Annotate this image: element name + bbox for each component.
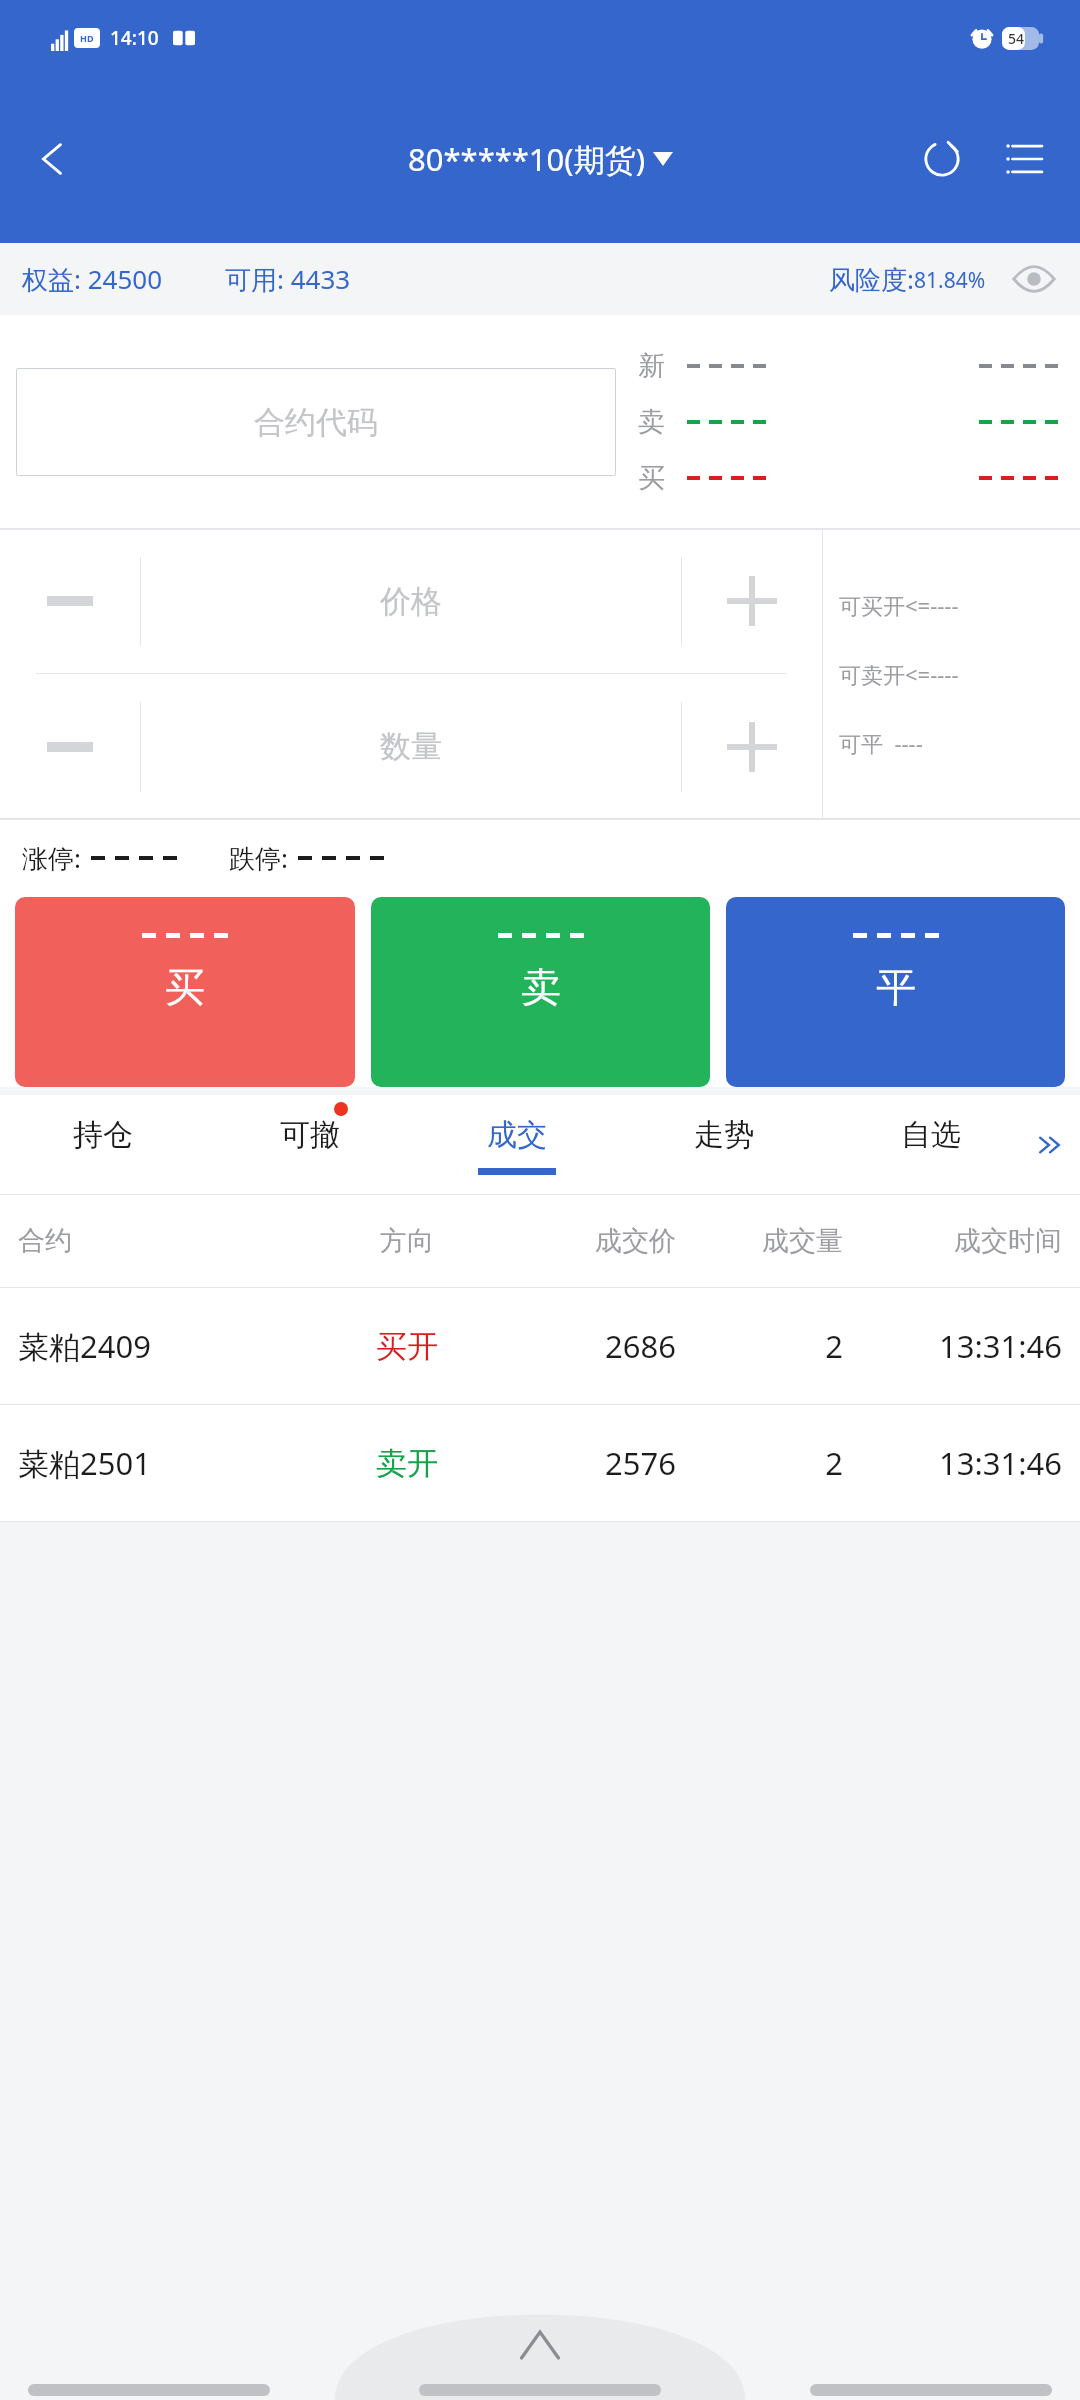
- staticText: 2686: [493, 1325, 676, 1367]
- staticText: 走势: [694, 1116, 754, 1154]
- staticText: 54: [1008, 29, 1025, 48]
- button[interactable]: 菜粕2501: [0, 1405, 1080, 1521]
- button[interactable]: Navigation: [810, 2384, 1052, 2396]
- staticText: 卖开: [321, 1444, 493, 1483]
- button[interactable]: 80*****10(期货): [408, 138, 673, 180]
- button[interactable]: 持仓: [0, 1095, 206, 1195]
- staticText: 风险度:: [829, 261, 914, 297]
- staticText: 涨停:: [22, 840, 81, 876]
- staticText: 可买开<=----: [839, 590, 959, 620]
- staticText: 买开: [321, 1327, 493, 1366]
- staticText: 卖: [521, 962, 561, 1012]
- button[interactable]: Increase 数量: [682, 674, 822, 819]
- staticText: 14:10: [110, 25, 159, 51]
- staticText: 菜粕2501: [18, 1442, 321, 1484]
- staticText: 持仓: [73, 1116, 133, 1154]
- staticText: 可平 ----: [839, 728, 923, 758]
- staticText: 自选: [901, 1116, 961, 1154]
- button[interactable]: Back: [14, 120, 92, 198]
- staticText: 可用: 4433: [225, 261, 351, 297]
- button[interactable]: Navigation: [419, 2384, 661, 2396]
- button[interactable]: 走势: [620, 1095, 827, 1195]
- button[interactable]: Navigation: [28, 2384, 270, 2396]
- button[interactable]: 平: [726, 897, 1065, 1087]
- staticText: 价格: [380, 582, 442, 621]
- button[interactable]: 菜粕2409: [0, 1288, 1080, 1404]
- staticText: 卖: [638, 405, 665, 439]
- staticText: 成交量: [676, 1224, 843, 1258]
- staticText: 平: [876, 962, 916, 1012]
- staticText: 2: [676, 1325, 843, 1367]
- button[interactable]: 价格: [141, 529, 681, 673]
- staticText: 13:31:46: [843, 1325, 1062, 1367]
- staticText: 13:31:46: [843, 1442, 1062, 1484]
- button[interactable]: 可撤: [206, 1095, 413, 1195]
- staticText: 成交时间: [843, 1224, 1062, 1258]
- staticText: 买: [638, 461, 665, 495]
- staticText: 方向: [321, 1224, 493, 1258]
- staticText: 可撤: [280, 1116, 340, 1154]
- button[interactable]: 数量: [141, 674, 681, 819]
- staticText: 80*****10(期货): [408, 138, 645, 180]
- button[interactable]: 合约代码: [16, 368, 616, 476]
- staticText: 跌停:: [229, 840, 288, 876]
- staticText: 2: [676, 1442, 843, 1484]
- staticText: 可卖开<=----: [839, 659, 959, 689]
- button[interactable]: Menu: [988, 123, 1060, 195]
- staticText: 81.84%: [914, 266, 986, 295]
- button[interactable]: Toggle visibility: [1008, 253, 1060, 305]
- button[interactable]: More tabs: [1028, 1123, 1072, 1167]
- staticText: 合约: [18, 1224, 321, 1258]
- button[interactable]: 买: [15, 897, 355, 1087]
- staticText: 菜粕2409: [18, 1325, 321, 1367]
- button[interactable]: Increase 价格: [682, 529, 822, 673]
- staticText: 新: [638, 349, 665, 383]
- staticText: 买: [165, 962, 205, 1012]
- staticText: HD: [80, 32, 94, 44]
- staticText: 成交价: [493, 1224, 676, 1258]
- button[interactable]: Refresh: [906, 123, 978, 195]
- staticText: 成交: [487, 1116, 547, 1154]
- button[interactable]: Decrease 数量: [0, 674, 140, 819]
- button[interactable]: 卖: [371, 897, 710, 1087]
- staticText: 数量: [380, 727, 442, 766]
- button[interactable]: 自选: [827, 1095, 1034, 1195]
- button[interactable]: 成交: [413, 1095, 620, 1195]
- staticText: 权益: 24500: [22, 261, 163, 297]
- staticText: 合约代码: [254, 403, 378, 442]
- button[interactable]: Decrease 价格: [0, 529, 140, 673]
- staticText: 2576: [493, 1442, 676, 1484]
